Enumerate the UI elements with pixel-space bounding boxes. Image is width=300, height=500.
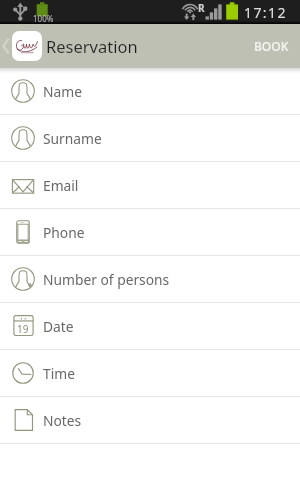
button[interactable]: 19 [0, 303, 300, 350]
staticText: Email [43, 176, 79, 195]
staticText: Notes [43, 411, 82, 430]
staticText: Number of persons [43, 270, 170, 289]
button[interactable]: Number of persons [0, 256, 300, 303]
button[interactable]: Surname [0, 115, 300, 162]
button[interactable]: Phone [0, 209, 300, 256]
staticText: Reservation [46, 35, 138, 57]
staticText: Date [43, 317, 74, 336]
staticText: Name [43, 82, 82, 101]
staticText: Time [43, 364, 75, 383]
staticText: Phone [43, 223, 85, 242]
staticText: R [198, 1, 205, 15]
staticText: 19 [17, 322, 29, 336]
staticText: 17:12 [244, 3, 287, 22]
staticText: BOOK [254, 38, 289, 54]
button[interactable]: Time [0, 350, 300, 397]
button[interactable]: Notes [0, 397, 300, 444]
button[interactable]: Navigate up [0, 24, 42, 68]
button[interactable]: Name [0, 68, 300, 115]
button[interactable]: Email [0, 162, 300, 209]
staticText: 100% [33, 13, 54, 24]
staticText: Surname [43, 129, 102, 148]
button[interactable]: BOOK [243, 24, 300, 68]
